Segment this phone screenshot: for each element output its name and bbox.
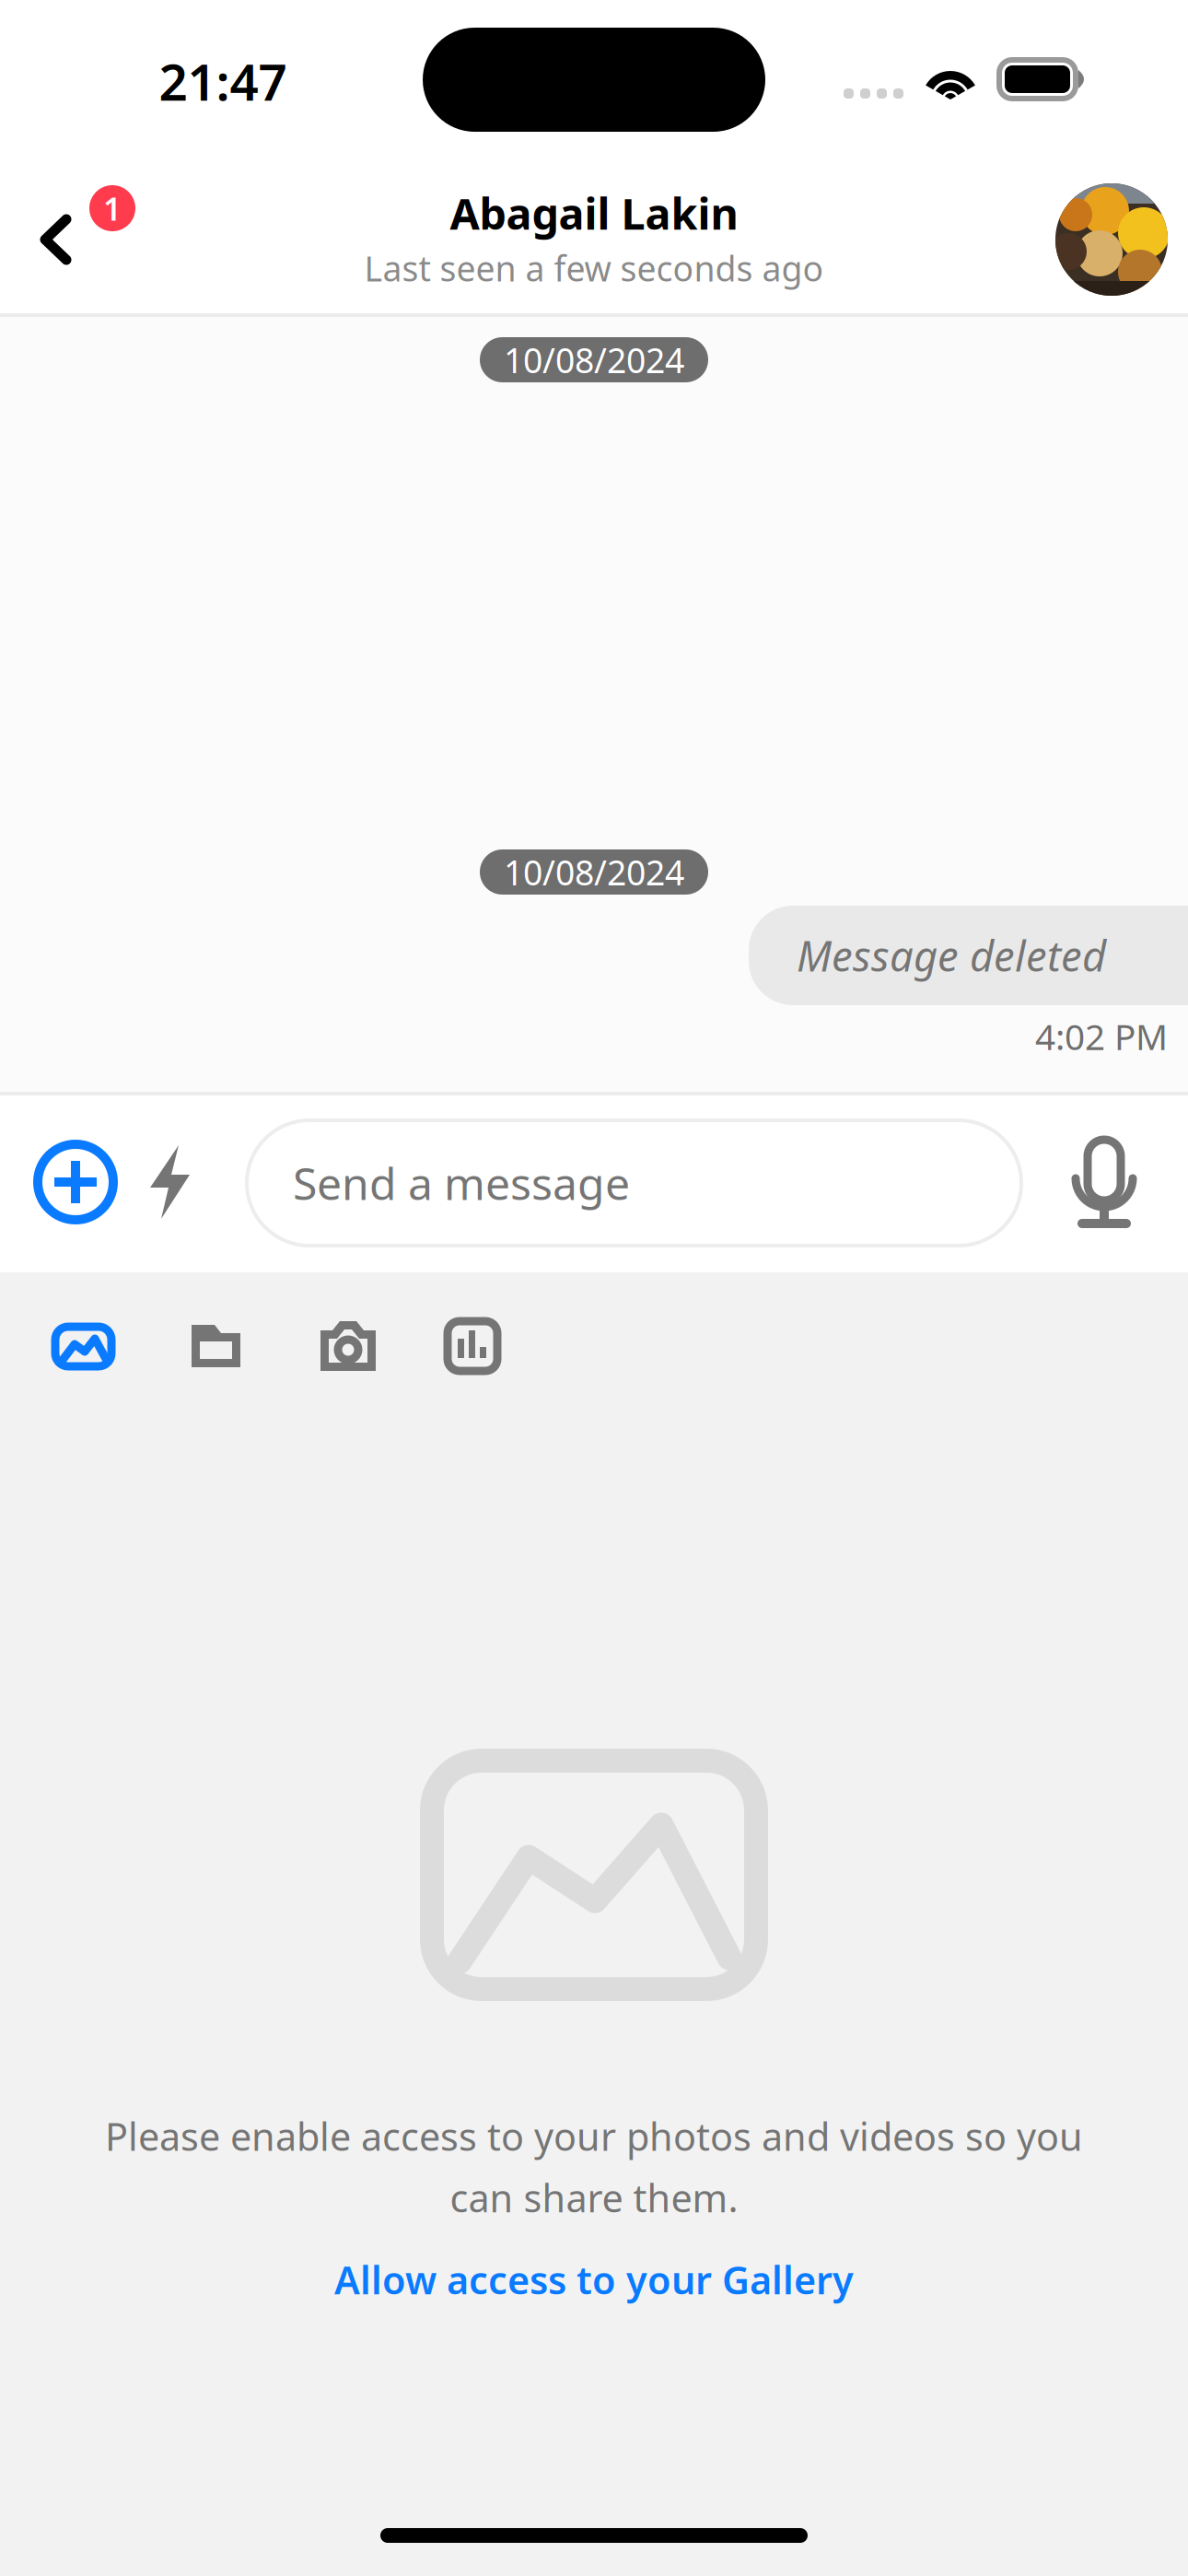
staticText: 10/08/2024 xyxy=(504,849,684,895)
staticText: Message deleted xyxy=(797,928,1106,983)
button[interactable]: Files xyxy=(149,1277,282,1378)
button[interactable]: Send a message xyxy=(247,1120,1021,1246)
staticText: Please enable access to your photos and … xyxy=(105,2111,1083,2161)
button[interactable]: Quick reply xyxy=(125,1134,214,1230)
button[interactable]: Photos xyxy=(17,1277,149,1378)
button[interactable]: Poll xyxy=(414,1277,547,1378)
button[interactable]: Back xyxy=(0,157,166,313)
button[interactable]: Voice message xyxy=(1054,1132,1155,1234)
staticText: Last seen a few seconds ago xyxy=(364,245,824,291)
button[interactable]: Add attachment xyxy=(28,1134,123,1230)
button[interactable]: Allow access to your Gallery xyxy=(312,2241,876,2318)
staticText: Allow access to your Gallery xyxy=(334,2254,854,2305)
staticText: 21:47 xyxy=(159,48,287,115)
staticText: 4:02 PM xyxy=(1035,1013,1168,1060)
button[interactable]: Profile photo xyxy=(1055,183,1168,296)
button[interactable]: Camera xyxy=(282,1277,414,1378)
staticText: 10/08/2024 xyxy=(504,337,684,383)
staticText: can share them. xyxy=(450,2172,738,2223)
staticText: 1 xyxy=(103,187,122,229)
staticText: Abagail Lakin xyxy=(450,184,738,242)
staticText: Send a message xyxy=(293,1154,630,1212)
